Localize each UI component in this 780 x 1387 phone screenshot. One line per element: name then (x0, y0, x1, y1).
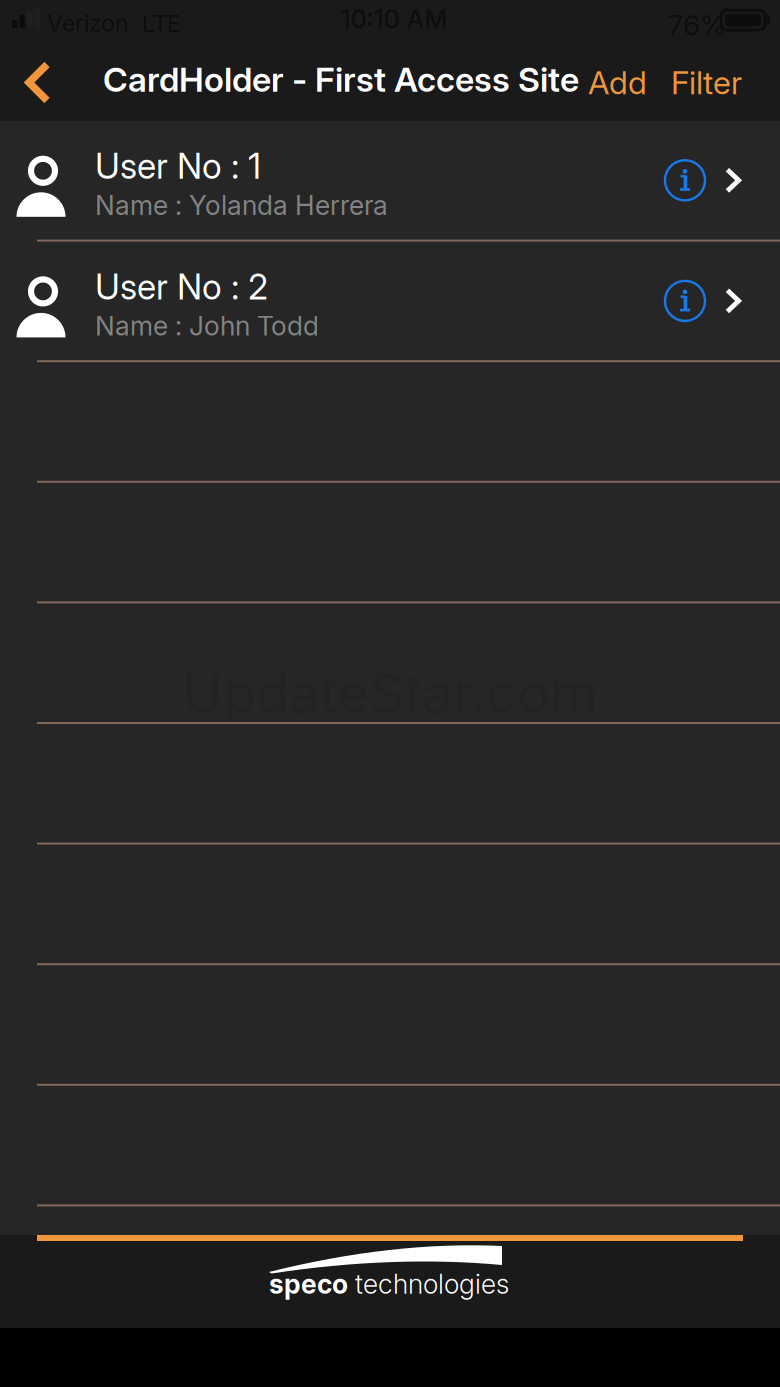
button[interactable]: Add (575, 44, 659, 121)
staticText: CardHolder - First Access Site (103, 59, 579, 100)
button[interactable]: Open user 1 (707, 121, 780, 240)
staticText: UpdateStar.com (182, 660, 598, 726)
staticText: User No : 1 (95, 145, 261, 187)
staticText: Name : John Todd (95, 310, 319, 342)
staticText: Name : Yolanda Herrera (95, 189, 388, 221)
staticText: 76% (668, 8, 726, 42)
button[interactable]: Information for user 2 (663, 242, 707, 360)
staticText: LTE (142, 10, 181, 37)
button[interactable]: Information for user 1 (663, 121, 707, 240)
button[interactable]: Open user 2 (707, 242, 780, 360)
staticText: 10:10 AM (340, 4, 447, 34)
staticText: Verizon (47, 9, 129, 37)
staticText: Filter (671, 63, 742, 102)
staticText: speco (269, 1268, 348, 1300)
staticText: Add (588, 63, 647, 102)
button[interactable]: Back (0, 44, 76, 121)
staticText: User No : 2 (95, 266, 268, 308)
button[interactable]: Filter (659, 44, 780, 121)
staticText: technologies (348, 1268, 509, 1300)
